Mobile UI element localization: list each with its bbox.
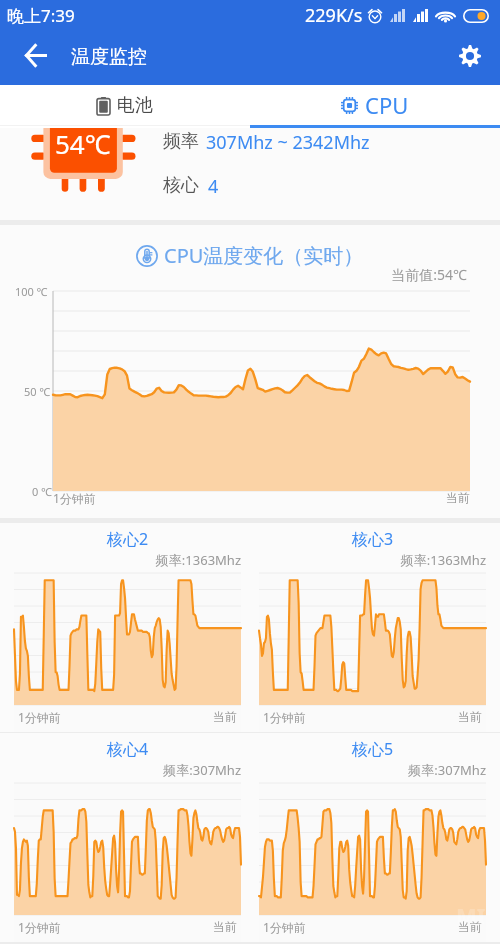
- staticText: 频率:1363Mhz: [259, 551, 486, 569]
- staticText: 0 ℃: [32, 484, 53, 499]
- staticText: 100 ℃: [15, 284, 48, 299]
- staticText: 1分钟前: [263, 919, 306, 935]
- staticText: 1分钟前: [263, 709, 306, 725]
- staticText: 当前: [446, 490, 470, 505]
- staticText: CPU温度变化（实时）: [164, 242, 364, 269]
- staticText: 1分钟前: [53, 490, 96, 506]
- staticText: 当前: [14, 919, 237, 934]
- button[interactable]: 电池: [0, 85, 250, 125]
- staticText: 电池: [117, 94, 153, 117]
- staticText: 频率:307Mhz: [14, 761, 241, 779]
- staticText: 频率: [163, 130, 199, 153]
- staticText: 核心4: [14, 738, 241, 760]
- staticText: 晚上7:39: [7, 4, 75, 27]
- staticText: 50 ℃: [24, 384, 51, 399]
- staticText: 4: [208, 174, 219, 199]
- staticText: 温度监控: [71, 45, 147, 69]
- staticText: 307Mhz ~ 2342Mhz: [206, 130, 370, 155]
- staticText: 核心3: [259, 528, 486, 550]
- staticText: 当前: [14, 709, 237, 724]
- staticText: MI: [456, 900, 486, 930]
- staticText: 频率:1363Mhz: [14, 551, 241, 569]
- staticText: 核心2: [14, 528, 241, 550]
- staticText: 229K/s: [305, 3, 363, 28]
- button[interactable]: Back: [11, 31, 60, 80]
- staticText: CPU: [365, 90, 409, 120]
- staticText: 1分钟前: [18, 709, 61, 725]
- staticText: 1分钟前: [18, 919, 61, 935]
- button[interactable]: Settings: [445, 31, 494, 80]
- staticText: 当前值:54℃: [0, 265, 467, 284]
- staticText: 核心: [163, 174, 199, 197]
- staticText: 54℃: [55, 128, 111, 161]
- button[interactable]: CPU: [250, 85, 500, 125]
- staticText: 当前: [259, 919, 482, 934]
- staticText: 核心5: [259, 738, 486, 760]
- staticText: 当前: [259, 709, 482, 724]
- staticText: 频率:307Mhz: [259, 761, 486, 779]
